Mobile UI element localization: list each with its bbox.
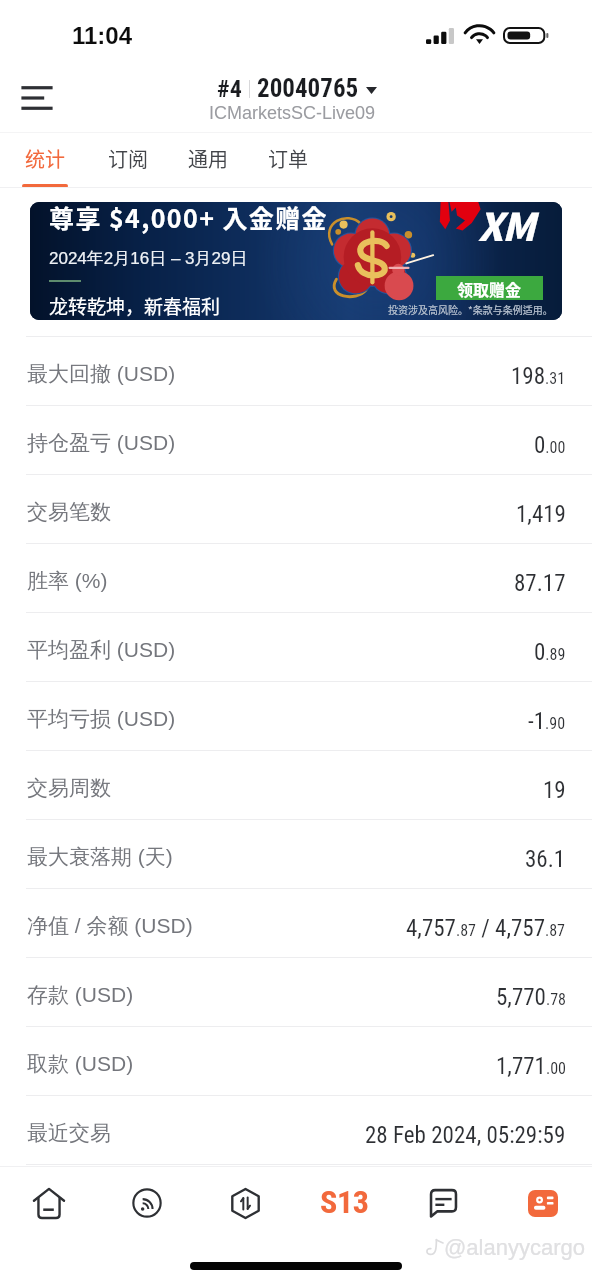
staticText: 20040765 <box>257 74 359 103</box>
staticText: 0.00 <box>534 432 566 459</box>
button[interactable]: 持仓盈亏 (USD) <box>0 406 592 475</box>
staticText: 0.89 <box>534 639 566 666</box>
staticText: @alanyycargo <box>444 1235 585 1260</box>
staticText: 尊享 $4,000+ 入金赠金 <box>49 202 328 235</box>
staticText: 存款 (USD) <box>27 982 134 1008</box>
staticText: 平均盈利 (USD) <box>27 637 176 663</box>
button[interactable]: 交易周数 <box>0 751 592 820</box>
staticText: 11:04 <box>72 22 133 49</box>
staticText: #4 <box>217 75 242 103</box>
staticText: 统计 <box>25 144 65 173</box>
button[interactable]: 平均亏损 (USD) <box>0 682 592 751</box>
staticText: 订单 <box>268 144 308 173</box>
staticText: 1,419 <box>516 501 566 528</box>
button[interactable]: 取款 (USD) <box>0 1027 592 1096</box>
button[interactable]: 最近交易 <box>0 1096 592 1165</box>
staticText: 投资涉及高风险。*条款与条例适用。 <box>388 302 553 316</box>
button[interactable]: Messages <box>394 1167 493 1239</box>
staticText: 最近交易 <box>27 1120 111 1146</box>
button[interactable]: 领取赠金 <box>436 276 543 300</box>
staticText: 领取赠金 <box>457 277 522 300</box>
staticText: 最大衰落期 (天) <box>27 844 173 870</box>
button[interactable]: Menu <box>10 71 64 125</box>
staticText: S13 <box>320 1183 369 1221</box>
staticText: 龙转乾坤，新春福利 <box>49 292 221 317</box>
button[interactable]: 订单 <box>248 133 328 188</box>
button[interactable]: 最大回撤 (USD) <box>0 337 592 406</box>
button[interactable]: 存款 (USD) <box>0 958 592 1027</box>
button[interactable]: Dashboard <box>295 1167 394 1239</box>
staticText: 1,771.00 <box>496 1053 566 1080</box>
staticText: 198.31 <box>511 363 566 390</box>
staticText: 平均亏损 (USD) <box>27 706 176 732</box>
staticText: 28 Feb 2024, 05:29:59 <box>365 1122 566 1149</box>
staticText: 订阅 <box>108 144 148 173</box>
button[interactable]: Signals <box>98 1167 196 1239</box>
staticText: -1.90 <box>528 708 566 735</box>
staticText: 5,770.78 <box>496 984 566 1011</box>
staticText: 4,757.87 / 4,757.87 <box>406 915 566 942</box>
staticText: 胜率 (%) <box>27 568 108 594</box>
button[interactable]: Trade <box>196 1167 295 1239</box>
button[interactable]: 平均盈利 (USD) <box>0 613 592 682</box>
staticText: 19 <box>543 777 566 804</box>
button[interactable]: 订阅 <box>88 133 168 188</box>
staticText: 2024年2月16日 – 3月29日 <box>49 248 248 269</box>
button[interactable]: #4 <box>213 74 380 123</box>
staticText: 36.1 <box>525 846 566 873</box>
staticText: 87.17 <box>514 570 566 597</box>
staticText: 通用 <box>188 144 228 173</box>
staticText: 取款 (USD) <box>27 1051 134 1077</box>
button[interactable]: 统计 <box>2 133 88 188</box>
button[interactable]: 交易笔数 <box>0 475 592 544</box>
button[interactable]: 尊享 $4,000+ 入金赠金 <box>30 202 562 320</box>
button[interactable]: 胜率 (%) <box>0 544 592 613</box>
button[interactable]: 最大衰落期 (天) <box>0 820 592 889</box>
staticText: 持仓盈亏 (USD) <box>27 430 176 456</box>
staticText: XM <box>478 202 535 252</box>
staticText: 最大回撤 (USD) <box>27 361 176 387</box>
button[interactable]: 净值 / 余额 (USD) <box>0 889 592 958</box>
button[interactable]: Home <box>0 1167 98 1239</box>
button[interactable]: Profile <box>493 1167 592 1239</box>
button[interactable]: 通用 <box>168 133 248 188</box>
staticText: 交易周数 <box>27 775 111 801</box>
staticText: 交易笔数 <box>27 499 111 525</box>
staticText: 净值 / 余额 (USD) <box>27 913 193 939</box>
staticText: ICMarketsSC-Live09 <box>209 103 376 123</box>
